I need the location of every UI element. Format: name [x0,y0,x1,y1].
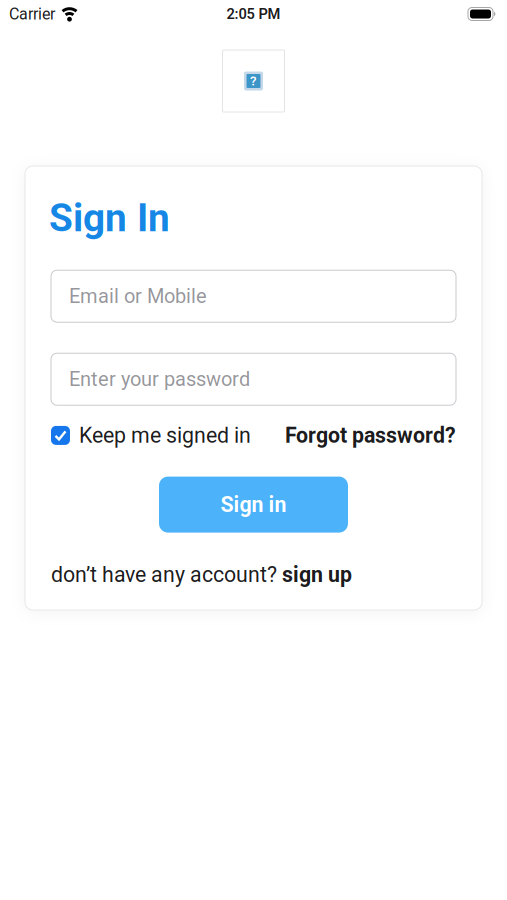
staticText: Sign In [49,196,170,240]
staticText: sign up [282,563,352,587]
button[interactable]: Forgot password? [285,423,456,448]
staticText: Forgot password? [285,423,456,448]
button[interactable]: sign up [282,563,352,587]
button[interactable]: Sign in [159,477,348,533]
staticText: Keep me signed in [79,423,251,448]
staticText: don’t have any account? [51,563,282,587]
staticText: 2:05 PM [226,6,280,22]
staticText: ? [250,73,257,89]
button[interactable]: Email or Mobile [51,270,456,322]
button[interactable]: Keep me signed in [51,423,251,448]
staticText: Carrier [9,5,55,23]
staticText: Sign in [220,492,286,517]
staticText: Enter your password [69,368,250,391]
button[interactable]: Enter your password [51,353,456,405]
staticText: Email or Mobile [69,285,207,308]
